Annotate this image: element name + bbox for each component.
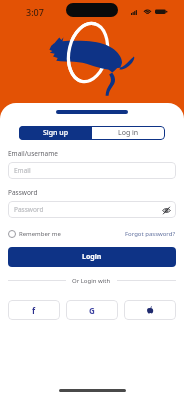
button[interactable]: Show password <box>161 205 171 215</box>
staticText: Email/username <box>8 149 58 158</box>
button[interactable]: Log in <box>92 126 165 140</box>
button[interactable]: Remember me <box>8 230 61 238</box>
staticText: Or Login with <box>72 277 111 285</box>
button[interactable]: Email <box>8 162 176 179</box>
button[interactable]: Forgot password? <box>125 230 176 238</box>
staticText: Login <box>82 252 102 262</box>
staticText: Log in <box>118 128 139 138</box>
button[interactable]: Google <box>66 300 118 320</box>
staticText: G <box>89 305 95 316</box>
button[interactable]: Facebook <box>8 300 60 320</box>
staticText: Forgot password? <box>125 230 176 238</box>
staticText: 3:07 <box>26 6 44 18</box>
button[interactable]: Sign up <box>19 126 92 140</box>
staticText: Remember me <box>19 230 61 238</box>
button[interactable]: Apple <box>124 300 176 320</box>
staticText: Email <box>14 166 31 175</box>
staticText: Password <box>8 188 38 197</box>
staticText: f <box>32 305 36 316</box>
button[interactable]: Login <box>8 247 176 267</box>
staticText: Sign up <box>43 128 69 138</box>
button[interactable]: Password <box>8 201 176 218</box>
staticText: Password <box>14 205 44 214</box>
